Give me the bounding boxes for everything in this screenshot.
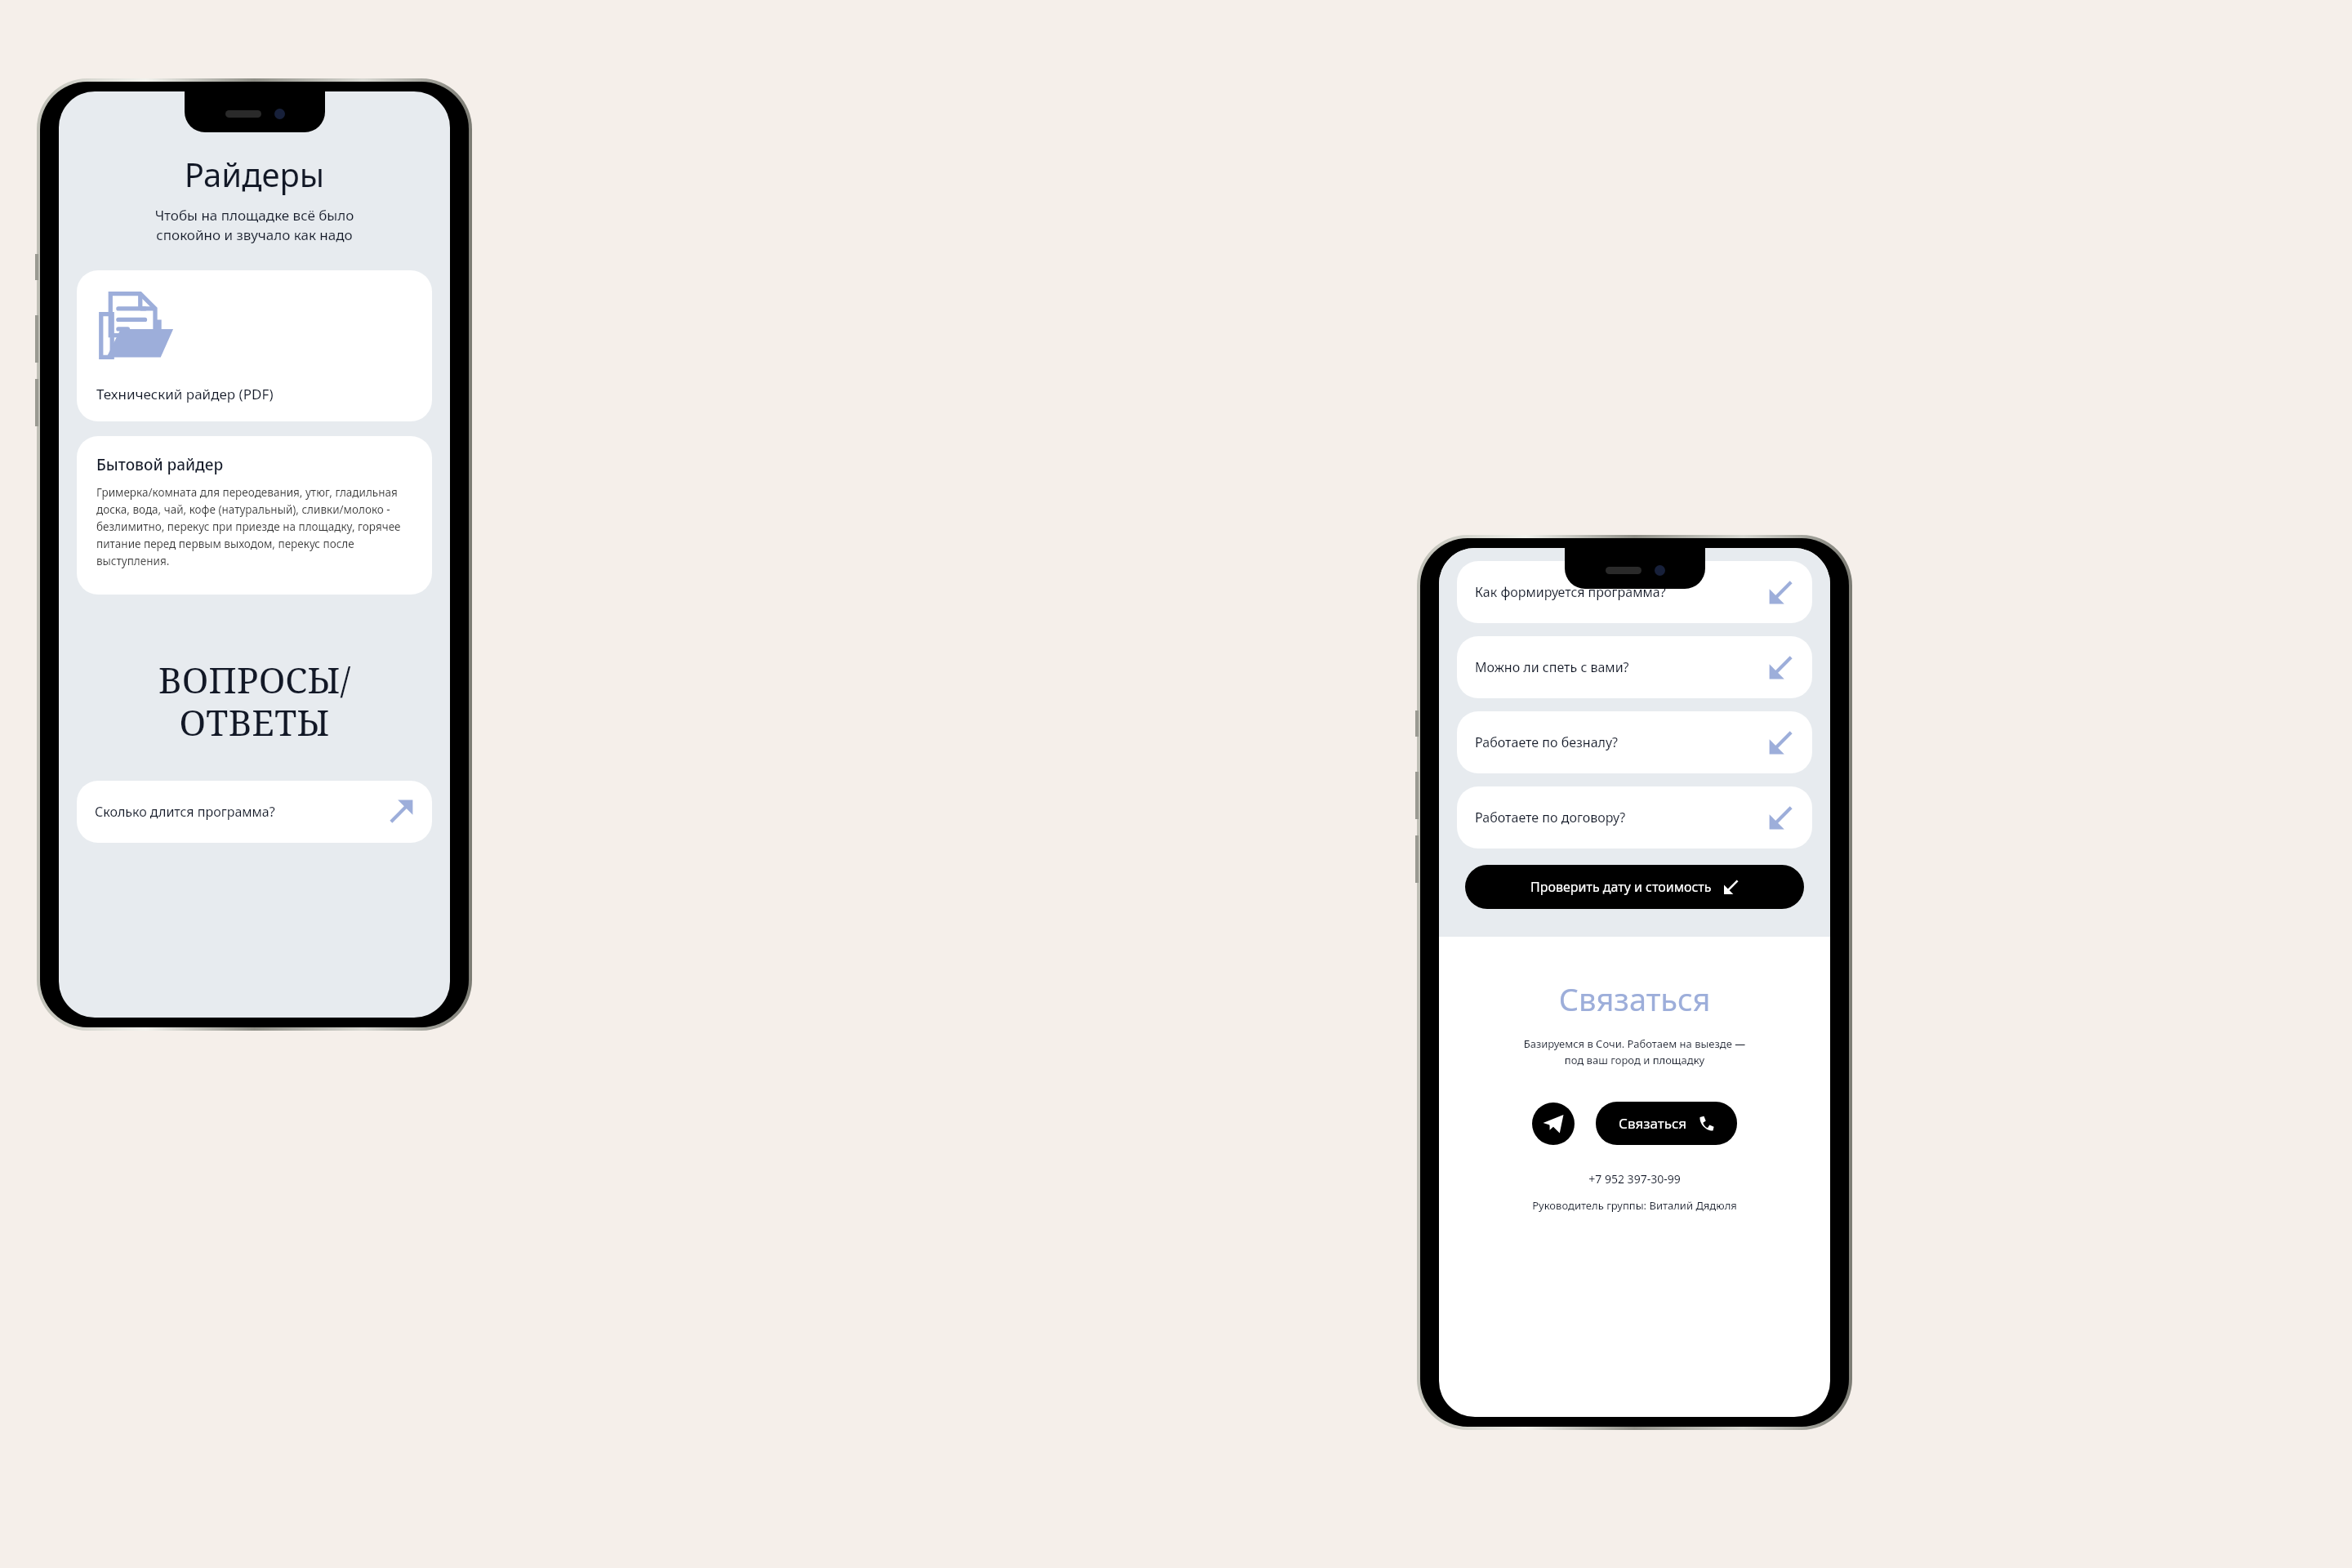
staticText: Базируемся в Сочи. Работаем на выезде — …: [1439, 1036, 1830, 1067]
staticText: Руководитель группы: Виталий Дядюля: [1439, 1198, 1830, 1213]
button[interactable]: Работаете по безналу?: [1457, 711, 1812, 773]
staticText: Гримерка/комната для переодевания, утюг,…: [96, 485, 412, 568]
other: Раскрыть: [1768, 804, 1794, 831]
staticText: Проверить дату и стоимость: [1530, 878, 1712, 896]
staticText: Технический райдер (PDF): [96, 385, 274, 403]
other: Раскрыть: [388, 799, 414, 825]
button[interactable]: Связаться: [1596, 1102, 1737, 1145]
other: Раскрыть: [1768, 579, 1794, 605]
staticText: +7 952 397-30-99: [1439, 1171, 1830, 1187]
staticText: Как формируется программа?: [1475, 583, 1760, 601]
staticText: Бытовой райдер: [96, 454, 224, 475]
staticText: Связаться: [1439, 978, 1830, 1020]
button[interactable]: Технический райдер (PDF): [77, 270, 432, 421]
staticText: Работаете по договору?: [1475, 808, 1760, 826]
button[interactable]: Бытовой райдер: [77, 436, 432, 595]
staticText: Связаться: [1619, 1114, 1687, 1133]
button[interactable]: Как формируется программа?: [1457, 561, 1812, 623]
other: Раскрыть: [1768, 729, 1794, 755]
staticText: Райдеры: [59, 152, 450, 196]
button[interactable]: Можно ли спеть с вами?: [1457, 636, 1812, 698]
button[interactable]: Работаете по договору?: [1457, 786, 1812, 849]
button[interactable]: Проверить дату и стоимость: [1465, 865, 1804, 909]
staticText: Чтобы на площадке всё было спокойно и зв…: [59, 206, 450, 244]
staticText: Работаете по безналу?: [1475, 733, 1760, 751]
staticText: Сколько длится программа?: [95, 803, 380, 821]
button[interactable]: Сколько длится программа?: [77, 781, 432, 843]
other: Раскрыть: [1768, 654, 1794, 680]
staticText: ВОПРОСЫ/ ОТВЕТЫ: [59, 655, 450, 746]
button[interactable]: Telegram: [1532, 1102, 1575, 1145]
staticText: Можно ли спеть с вами?: [1475, 658, 1760, 676]
